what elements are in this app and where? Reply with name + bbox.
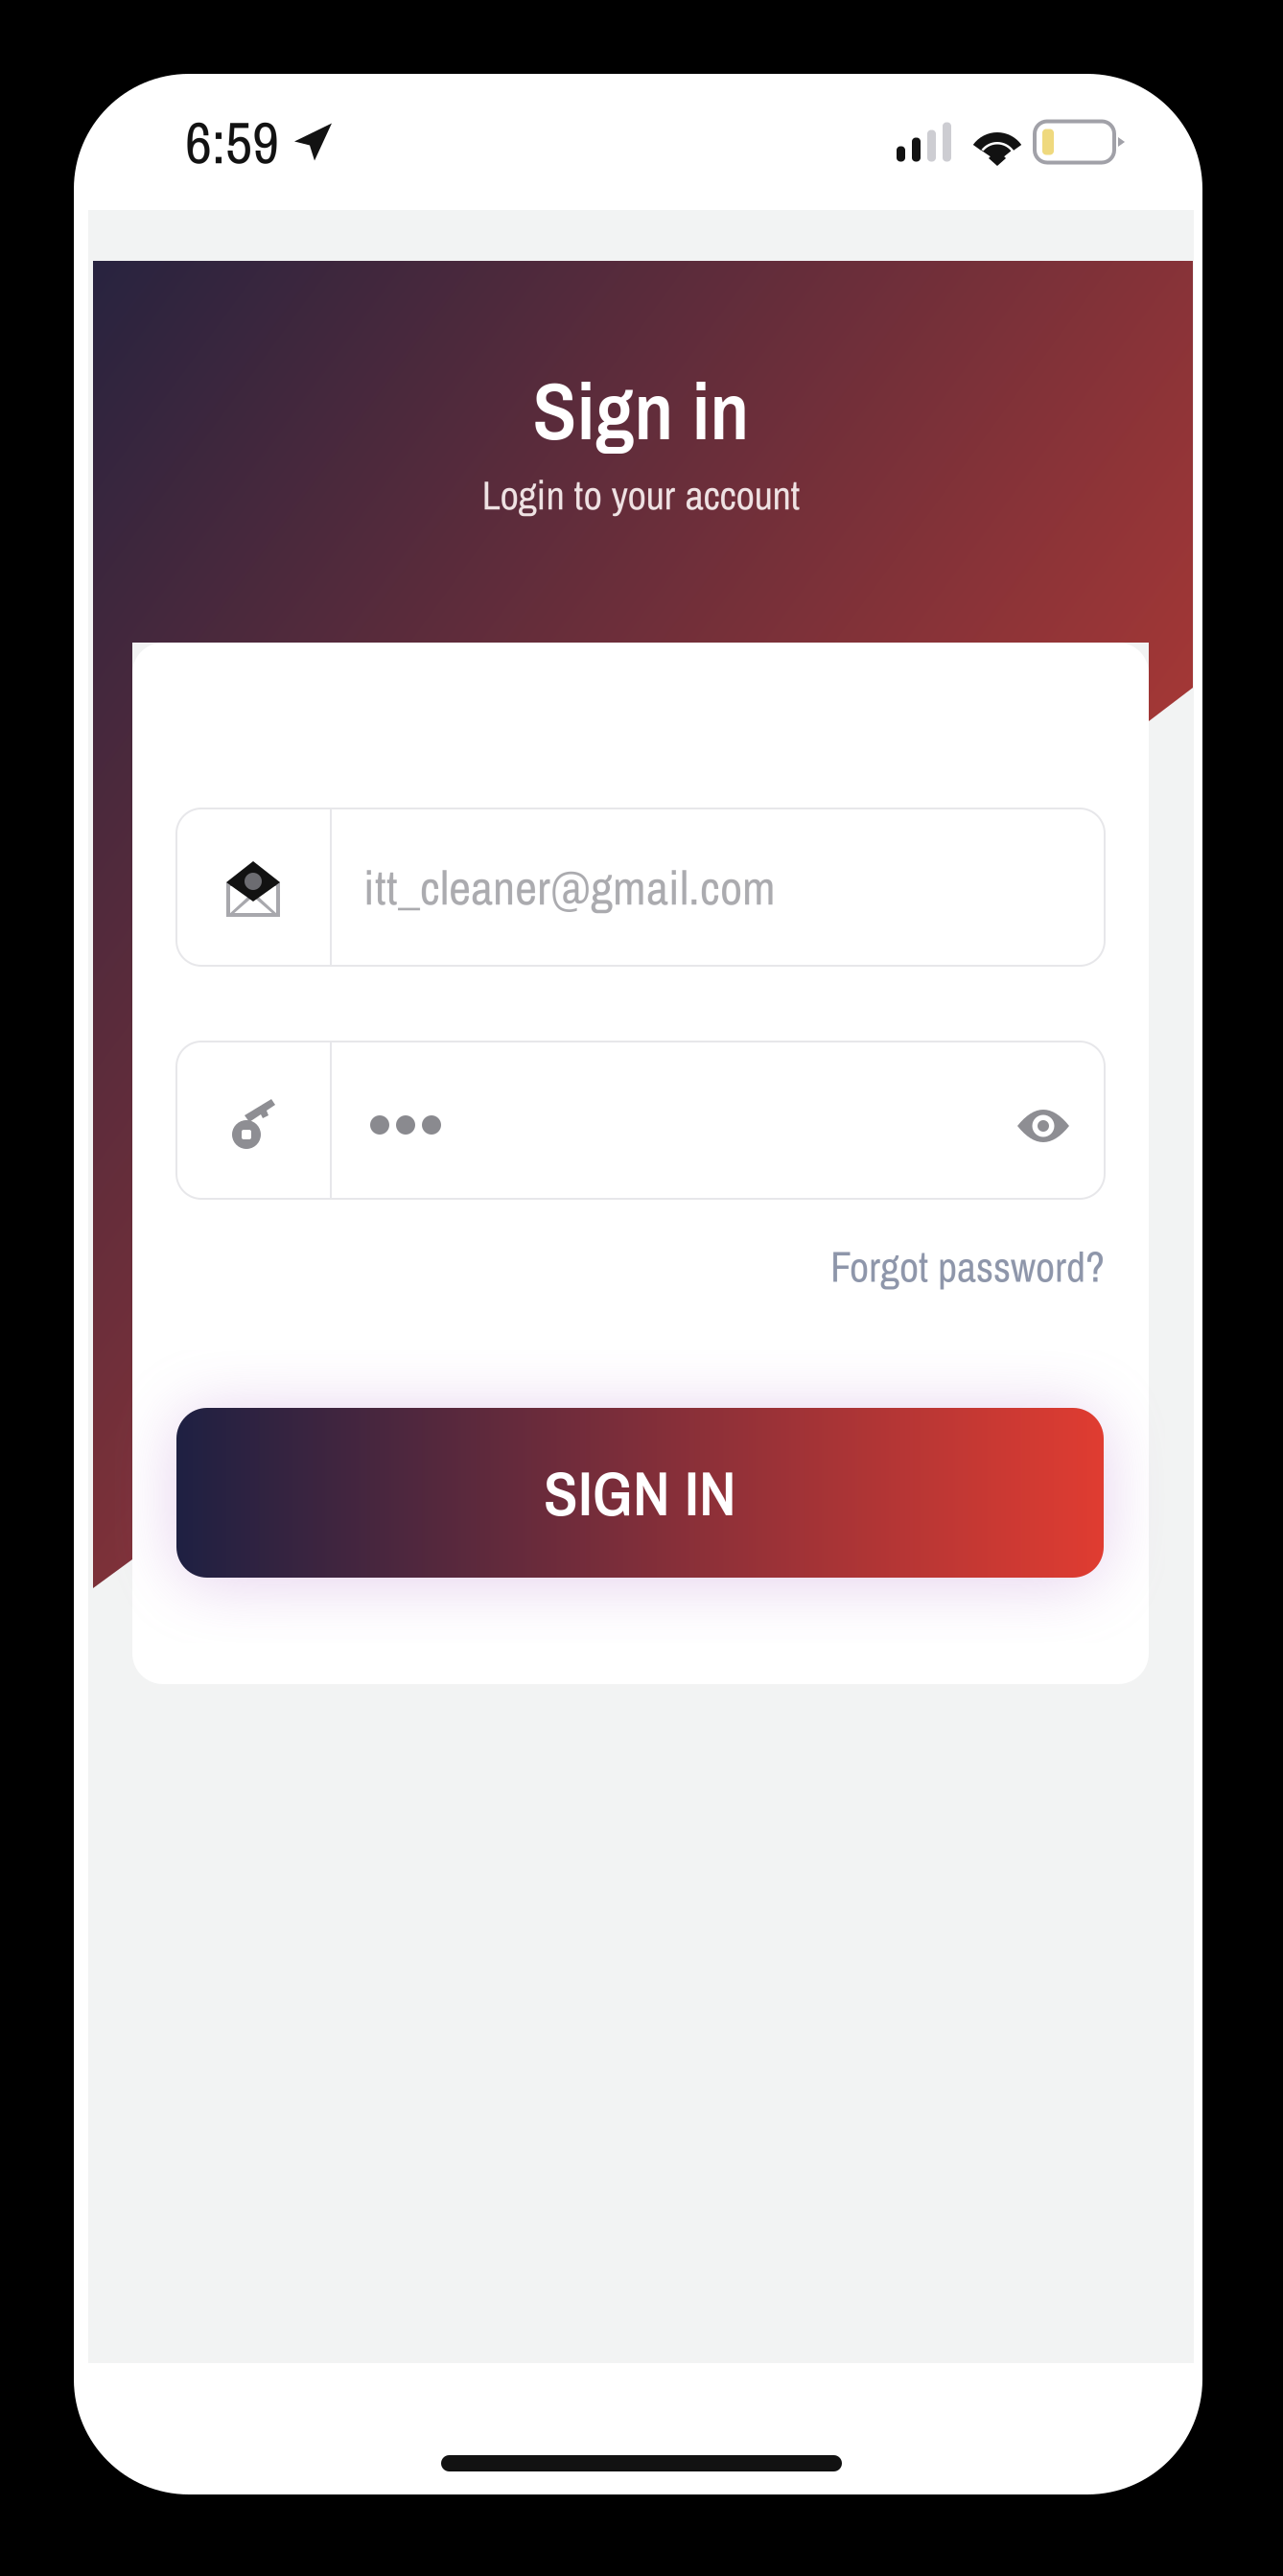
staticText: 6:59 bbox=[185, 102, 279, 182]
staticText: Forgot password? bbox=[830, 1238, 1105, 1295]
staticText: Login to your account bbox=[482, 467, 800, 522]
staticText: SIGN IN bbox=[544, 1451, 736, 1535]
staticText: itt_cleaner@gmail.com bbox=[363, 854, 776, 920]
button[interactable]: SIGN IN bbox=[176, 1408, 1104, 1578]
staticText: Sign in bbox=[533, 356, 749, 464]
button[interactable]: Email address bbox=[176, 808, 1105, 966]
button[interactable]: Forgot password? bbox=[830, 1229, 1105, 1305]
button[interactable]: Show password bbox=[982, 1042, 1105, 1199]
